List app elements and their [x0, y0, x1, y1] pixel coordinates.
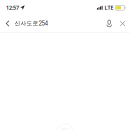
- button[interactable]: Voice search: [102, 14, 116, 32]
- staticText: 신사도로254: [14, 20, 48, 27]
- staticText: 12:57: [6, 4, 19, 11]
- button[interactable]: Close: [116, 14, 129, 32]
- staticText: LTE: [104, 4, 113, 11]
- button[interactable]: Back: [0, 14, 14, 32]
